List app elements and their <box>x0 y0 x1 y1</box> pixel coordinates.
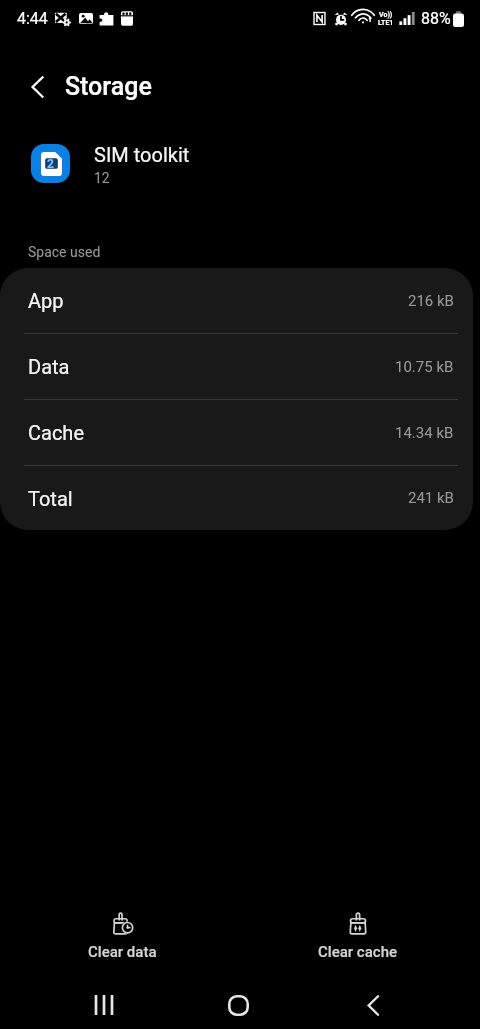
staticText: Cache <box>28 421 84 444</box>
button[interactable]: Cache <box>0 400 473 465</box>
staticText: Total <box>28 487 73 510</box>
button[interactable]: Back <box>339 981 407 1029</box>
staticText: Data <box>28 355 70 378</box>
button[interactable]: Navigate up <box>15 65 59 109</box>
staticText: LTE1 <box>378 19 394 27</box>
staticText: Clear data <box>88 943 157 961</box>
staticText: 10.75 kB <box>395 358 454 376</box>
staticText: 241 kB <box>408 489 454 507</box>
button[interactable]: Clear cache <box>277 903 438 971</box>
button[interactable]: Data <box>0 334 473 399</box>
button[interactable]: 2 <box>0 132 480 200</box>
staticText: 4:44 <box>17 9 48 28</box>
staticText: App <box>28 289 64 312</box>
staticText: 88% <box>421 9 451 28</box>
staticText: Storage <box>65 72 152 101</box>
button[interactable]: Clear data <box>42 903 203 971</box>
staticText: 14.34 kB <box>395 424 454 442</box>
button[interactable]: App <box>0 268 473 333</box>
staticText: Clear cache <box>318 943 398 961</box>
button[interactable]: Recent apps <box>70 981 138 1029</box>
button[interactable]: Home <box>204 981 272 1029</box>
staticText: 216 kB <box>408 292 454 310</box>
staticText: 12 <box>94 170 110 186</box>
staticText: Vo)) <box>379 11 393 19</box>
staticText: SIM toolkit <box>94 143 190 166</box>
staticText: 2 <box>47 157 54 171</box>
staticText: Space used <box>28 244 101 260</box>
button[interactable]: Total <box>0 466 473 530</box>
